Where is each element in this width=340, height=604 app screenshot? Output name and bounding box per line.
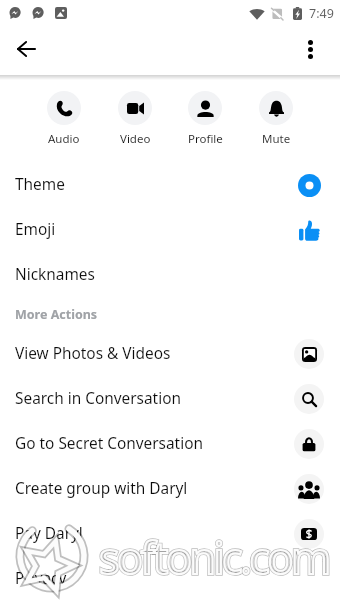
staticText: Emoji — [15, 219, 56, 240]
button[interactable]: View Photos & Videos — [0, 331, 340, 376]
button[interactable]: Pay Daryl — [0, 511, 340, 556]
staticText: Privacy — [15, 568, 67, 589]
staticText: Audio — [48, 131, 80, 147]
staticText: Nicknames — [15, 264, 95, 285]
button[interactable]: Privacy — [0, 556, 340, 601]
staticText: Mute — [262, 131, 291, 147]
staticText: Theme — [15, 174, 65, 195]
staticText: Video — [120, 131, 151, 147]
staticText: Profile — [188, 131, 223, 147]
button[interactable]: Back — [8, 31, 44, 67]
staticText: Go to Secret Conversation — [15, 433, 203, 454]
button[interactable]: Mute — [252, 91, 300, 147]
staticText: Pay Daryl — [15, 523, 83, 544]
button[interactable]: Profile — [181, 91, 229, 147]
staticText: 7:49 — [309, 5, 334, 22]
button[interactable]: Theme — [0, 162, 340, 207]
staticText: View Photos & Videos — [15, 343, 171, 364]
button[interactable]: Create group with Daryl — [0, 466, 340, 511]
button[interactable]: Search in Conversation — [0, 376, 340, 421]
button[interactable]: Emoji — [0, 207, 340, 252]
staticText: Search in Conversation — [15, 388, 181, 409]
button[interactable]: Nicknames — [0, 252, 340, 297]
staticText: Create group with Daryl — [15, 478, 188, 499]
button[interactable]: Audio — [40, 91, 88, 147]
button[interactable]: Go to Secret Conversation — [0, 421, 340, 466]
button[interactable]: Video — [111, 91, 159, 147]
staticText: More Actions — [15, 306, 98, 323]
staticText: softonic.com — [99, 528, 329, 587]
staticText: softonic.com — [99, 528, 329, 587]
button[interactable]: More options — [292, 31, 328, 67]
